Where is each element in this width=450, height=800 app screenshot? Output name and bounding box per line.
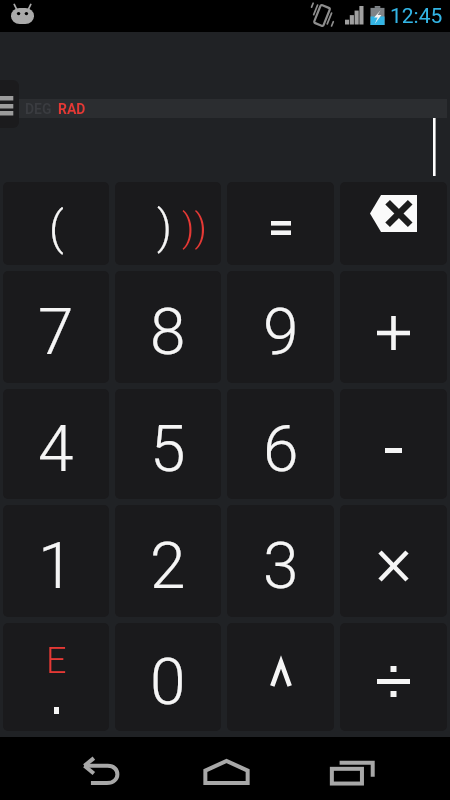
button[interactable]: Recent apps bbox=[306, 737, 398, 800]
staticText: 7 bbox=[38, 295, 74, 370]
button[interactable]: Delete bbox=[340, 182, 447, 265]
button[interactable]: DEG bbox=[25, 101, 52, 117]
button[interactable]: 7 bbox=[3, 271, 109, 383]
button[interactable]: 1 bbox=[3, 505, 109, 617]
staticText: 12:45 bbox=[390, 4, 443, 29]
button[interactable] bbox=[340, 389, 447, 499]
button[interactable]: ) bbox=[115, 182, 221, 265]
button[interactable]: E bbox=[3, 623, 109, 731]
staticText: DEG bbox=[25, 101, 52, 117]
button[interactable]: 3 bbox=[227, 505, 334, 617]
staticText: 8 bbox=[150, 295, 186, 370]
button[interactable]: RAD bbox=[58, 101, 86, 117]
button[interactable]: Open menu bbox=[0, 80, 19, 128]
button[interactable]: 8 bbox=[115, 271, 221, 383]
staticText: 1 bbox=[38, 529, 74, 604]
staticText: 4 bbox=[38, 412, 74, 487]
button[interactable] bbox=[340, 271, 447, 383]
staticText: 9 bbox=[263, 295, 299, 370]
button[interactable]: 0 bbox=[115, 623, 221, 731]
staticText: E bbox=[46, 640, 67, 682]
staticText: )) bbox=[182, 206, 207, 251]
staticText: ( bbox=[49, 201, 64, 255]
button[interactable] bbox=[227, 623, 334, 731]
button[interactable]: 9 bbox=[227, 271, 334, 383]
staticText: RAD bbox=[58, 101, 86, 117]
button[interactable] bbox=[340, 505, 447, 617]
staticText: 5 bbox=[150, 412, 186, 487]
button[interactable]: Home bbox=[180, 737, 272, 800]
button[interactable]: ( bbox=[3, 182, 109, 265]
button[interactable] bbox=[340, 623, 447, 731]
staticText: 6 bbox=[263, 412, 299, 487]
staticText: 2 bbox=[150, 529, 186, 604]
button[interactable] bbox=[227, 182, 334, 265]
staticText: 0 bbox=[150, 645, 186, 720]
button[interactable]: 2 bbox=[115, 505, 221, 617]
button[interactable]: 4 bbox=[3, 389, 109, 499]
button[interactable]: Back bbox=[55, 737, 147, 800]
staticText: ) bbox=[157, 200, 173, 254]
staticText: 3 bbox=[263, 529, 299, 604]
other: Delete bbox=[370, 195, 417, 232]
button[interactable]: 6 bbox=[227, 389, 334, 499]
button[interactable]: 5 bbox=[115, 389, 221, 499]
